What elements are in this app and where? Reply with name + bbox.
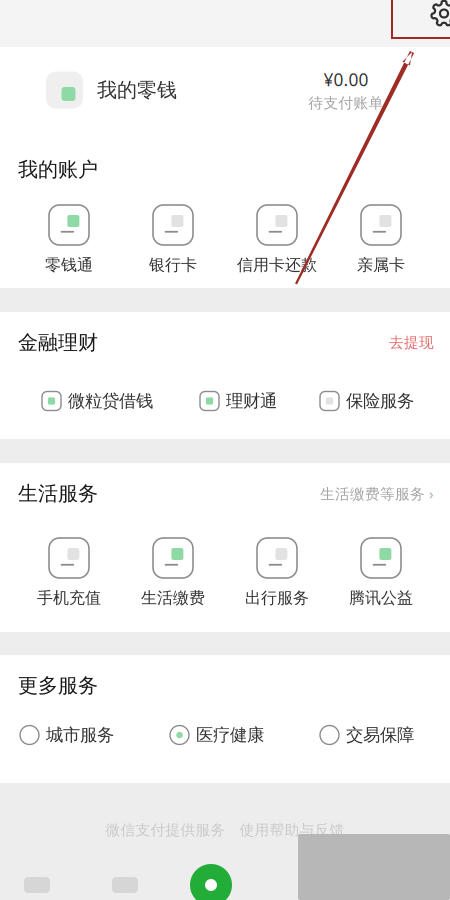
button[interactable]: 生活缴费 [121,538,225,618]
button[interactable]: 出行服务 [225,538,329,618]
button[interactable]: 保险服务 [320,388,430,414]
staticText: 银行卡 [149,255,197,275]
staticText: 生活服务 [18,481,98,506]
staticText: 微信支付提供服务 [105,821,225,839]
staticText: 更多服务 [18,673,98,698]
staticText: 理财通 [226,390,277,412]
button[interactable]: Settings [416,6,450,40]
staticText: 交易保障 [346,724,414,746]
button[interactable]: 手机充值 [17,538,121,618]
staticText: 出行服务 [245,588,309,608]
staticText: 信用卡还款 [237,255,317,275]
staticText: 零钱通 [45,255,93,275]
button[interactable]: 去提现 [389,333,434,351]
staticText: 手机充值 [37,588,101,608]
button[interactable]: 腾讯公益 [329,538,433,618]
staticText: 我的账户 [18,157,98,182]
button[interactable]: 亲属卡 [329,205,433,285]
staticText: 金融理财 [18,330,98,355]
staticText: 亲属卡 [357,255,405,275]
staticText: 待支付账单 [308,94,383,112]
button[interactable]: 信用卡还款 [225,205,329,285]
button[interactable]: ¥0.00 [286,72,406,108]
staticText: 医疗健康 [196,724,264,746]
staticText: 我的零钱 [97,78,177,102]
button[interactable]: 交易保障 [320,722,442,748]
button[interactable]: 城市服务 [20,722,170,748]
button[interactable]: 医疗健康 [170,722,320,748]
staticText: 腾讯公益 [349,588,413,608]
button[interactable]: 我的零钱 [46,71,236,108]
staticText: 保险服务 [346,390,414,412]
staticText: 城市服务 [46,724,114,746]
button[interactable]: 理财通 [200,388,320,414]
staticText: 去提现 [389,333,434,351]
button[interactable]: 零钱通 [17,205,121,285]
staticText: 使用帮助与反馈 [239,821,344,839]
staticText: 生活缴费等服务 › [320,484,434,503]
staticText: 生活缴费 [141,588,205,608]
staticText: ¥0.00 [323,68,368,91]
staticText: 微粒贷借钱 [68,390,153,412]
button[interactable]: 生活缴费等服务 › [320,484,434,502]
button[interactable]: 微粒贷借钱 [42,388,200,414]
button[interactable]: 银行卡 [121,205,225,285]
